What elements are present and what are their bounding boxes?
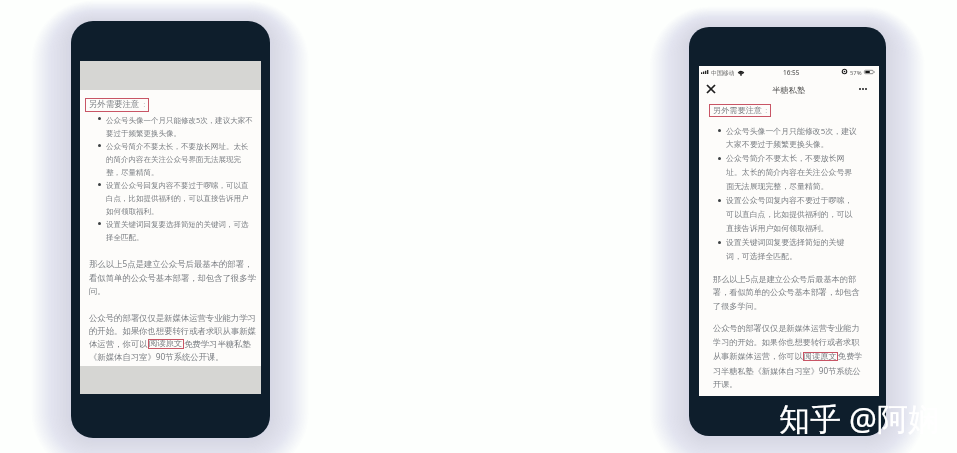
staticText: 知乎 @阿娴 [779,397,939,439]
button[interactable]: 阅读原文 [149,339,183,349]
staticText: 免费学习半糖私塾 [184,337,251,350]
staticText: ： [140,100,149,110]
staticText: 公众号简介不要太长，不要放长网 址。太长的简介内容在关注公众号界 面无法展现完整… [726,151,853,193]
staticText: 57% [850,69,862,77]
staticText: 习半糖私塾《新媒体自习室》90节系统公 开课。 [713,363,861,391]
staticText: 公众号的部署仅仅是新媒体运营专业能力 学习的开始。如果你也想要转行或者求职 [713,321,860,349]
staticText: 另外需要注意 [713,106,762,115]
staticText: 那么以上5点是建立公众号后最基本的部 署，看似简单的公众号基本部署，却包含 了很… [713,271,860,313]
staticText: 公众号头像一个月只能修改5次，建议 大家不要过于频繁更换头像。 [726,123,857,151]
staticText: ： [762,106,771,115]
staticText: 公众号的部署仅仅是新媒体运营专业能力学习 的开始。如果你也想要转行或者求职从事新… [89,311,256,337]
staticText: 体运营，你可以 [89,337,148,350]
button[interactable]: More options [852,80,876,99]
staticText: 中国移动 [711,69,735,76]
button[interactable]: Close [702,80,720,98]
staticText: 设置关键词回复要选择简短的关键 词，可选择全匹配。 [726,235,845,263]
staticText: 阅读原文 [804,352,837,361]
staticText: 16:55 [783,68,800,77]
staticText: 另外需要注意 [89,100,140,110]
staticText: 《新媒体自习室》90节系统公开课。 [89,350,224,364]
staticText: 公众号头像一个月只能修改5次，建议大家不 要过于频繁更换头像。 [106,112,253,139]
staticText: 公众号简介不要太长，不要放长网址。太长 的简介内容在关注公众号界面无法展现完 整… [106,139,249,178]
staticText: 半糖私塾 [772,85,806,95]
staticText: 设置公众号回复内容不要过于啰嗦， 可以直白点，比如提供福利的，可以 直接告诉用户… [726,193,853,235]
staticText: 设置关键词回复要选择简短的关键词，可选 择全匹配。 [106,217,249,243]
staticText: 免费学 [838,349,863,363]
staticText: 阅读原文 [149,339,183,349]
button[interactable]: 阅读原文 [804,352,837,361]
staticText: 那么以上5点是建立公众号后最基本的部署， 看似简单的公众号基本部署，却包含了很多… [89,257,256,297]
staticText: 从事新媒体运营，你可以 [713,349,803,363]
staticText: 设置公众号回复内容不要过于啰嗦，可以直 白点，比如提供福利的，可以直接告诉用户 … [106,178,249,217]
